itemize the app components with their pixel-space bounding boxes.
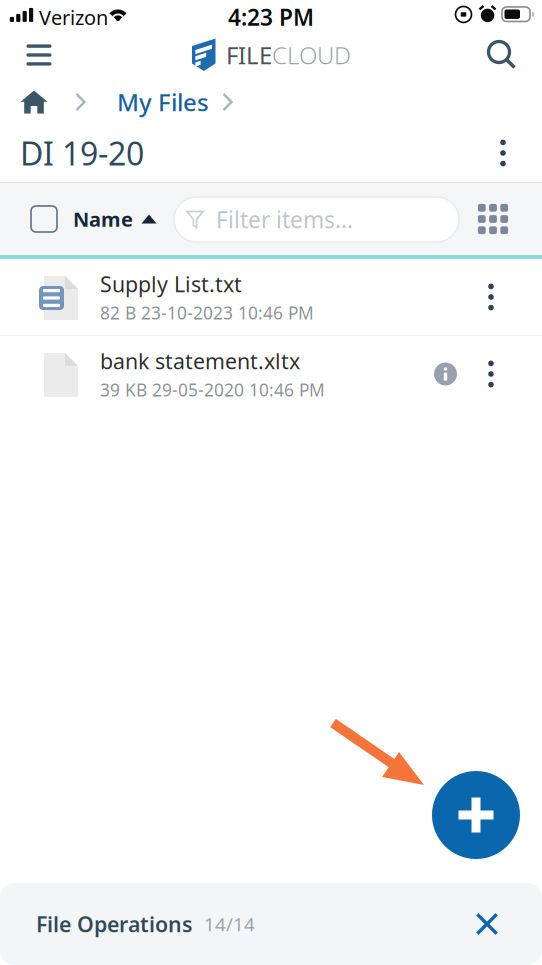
staticText: File Operations — [36, 910, 193, 938]
staticText: My Files — [117, 86, 209, 118]
button[interactable]: Close file operations — [455, 883, 519, 965]
staticText: CLOUD — [272, 39, 351, 71]
button[interactable]: Select all — [18, 183, 70, 255]
staticText: bank statement.xltx — [100, 347, 300, 375]
button[interactable]: Add — [432, 771, 520, 859]
staticText: FILE — [226, 39, 272, 71]
staticText: 4:23 PM — [228, 2, 314, 32]
staticText: Verizon — [39, 4, 108, 30]
staticText: Supply List.txt — [100, 270, 242, 298]
staticText: Filter items... — [216, 204, 353, 234]
button[interactable]: Home — [8, 80, 60, 124]
staticText: Name — [73, 206, 133, 232]
staticText: 39 KB 29-05-2020 10:46 PM — [100, 378, 325, 401]
staticText: 14/14 — [204, 912, 255, 936]
button[interactable]: Folder options — [473, 124, 533, 182]
button[interactable]: My Files — [103, 80, 223, 124]
staticText: DI 19-20 — [20, 132, 144, 174]
button[interactable]: Menu — [6, 30, 72, 80]
button[interactable]: Search — [472, 30, 532, 80]
button[interactable]: bank statement.xltx — [0, 336, 542, 413]
button[interactable]: Grid view — [462, 183, 524, 255]
button[interactable]: Supply List.txt — [0, 259, 542, 336]
staticText: 82 B 23-10-2023 10:46 PM — [100, 301, 314, 324]
button[interactable]: Name — [65, 183, 165, 255]
